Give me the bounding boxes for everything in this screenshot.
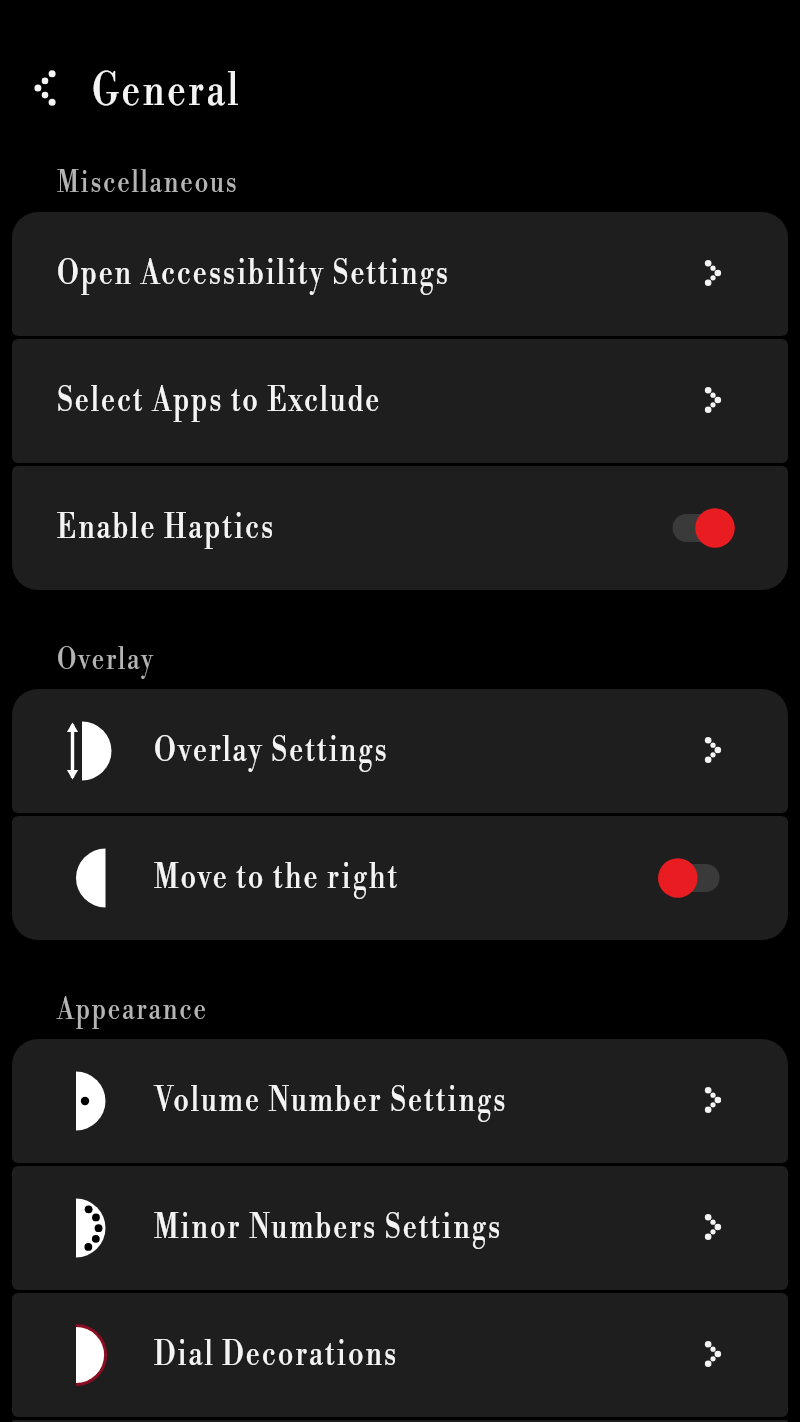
button[interactable]: Minor Numbers Settings: [12, 1166, 788, 1290]
staticText: Overlay Settings: [154, 729, 389, 773]
button[interactable]: Toggle off: [672, 856, 736, 900]
button[interactable]: Open: [690, 251, 736, 297]
staticText: Miscellaneous: [57, 163, 239, 202]
button[interactable]: Select Apps to Exclude: [12, 339, 788, 463]
staticText: Appearance: [57, 990, 208, 1029]
staticText: Select Apps to Exclude: [57, 379, 382, 423]
button[interactable]: Back: [22, 65, 68, 111]
button[interactable]: Move to the right: [12, 816, 788, 940]
button[interactable]: Open: [690, 1078, 736, 1124]
staticText: General: [92, 62, 242, 120]
button[interactable]: Open: [690, 1332, 736, 1378]
button[interactable]: Enable Haptics: [12, 466, 788, 590]
staticText: Minor Numbers Settings: [154, 1206, 503, 1250]
button[interactable]: Volume Number Settings: [12, 1039, 788, 1163]
button[interactable]: Open: [690, 1205, 736, 1251]
staticText: Dial Decorations: [154, 1333, 399, 1377]
staticText: Enable Haptics: [57, 506, 275, 550]
staticText: Overlay: [57, 640, 155, 679]
button[interactable]: Overlay Settings: [12, 689, 788, 813]
staticText: Move to the right: [154, 856, 400, 900]
staticText: Open Accessibility Settings: [57, 252, 451, 296]
button[interactable]: Toggle on: [672, 506, 736, 550]
button[interactable]: Open: [690, 378, 736, 424]
staticText: Volume Number Settings: [154, 1079, 508, 1123]
button[interactable]: Open: [690, 728, 736, 774]
button[interactable]: Dial Decorations: [12, 1293, 788, 1417]
button[interactable]: Open Accessibility Settings: [12, 212, 788, 336]
